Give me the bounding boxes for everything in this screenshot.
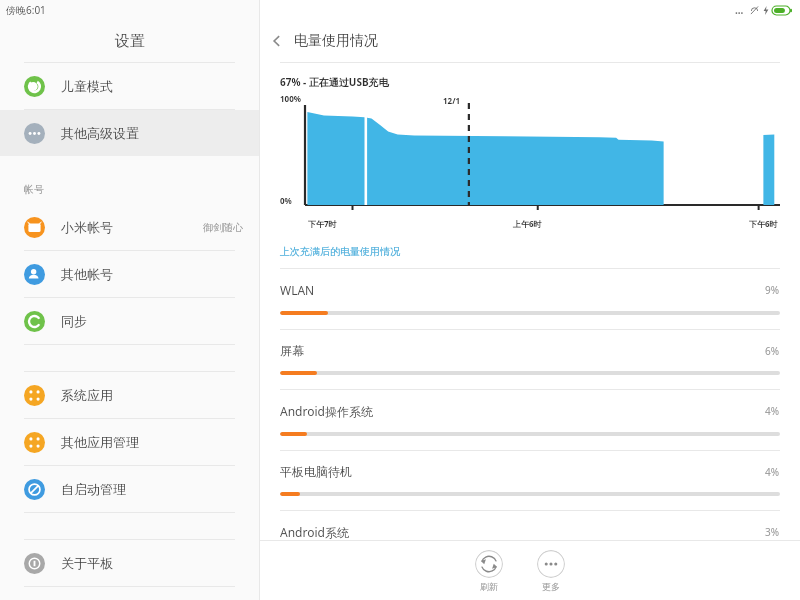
staticText: 系统应用 — [61, 387, 113, 403]
staticText: 帐号 — [24, 183, 44, 196]
staticText: 御剑随心 — [203, 221, 243, 234]
staticText: 12/1 — [443, 95, 461, 106]
button[interactable]: 小米帐号 — [0, 204, 259, 250]
button[interactable]: 其他高级设置 — [0, 110, 259, 156]
staticText: 儿童模式 — [61, 78, 113, 94]
button[interactable]: 其他应用管理 — [0, 419, 259, 465]
button[interactable]: 刷新 — [469, 548, 509, 594]
staticText: 设置 — [115, 32, 145, 51]
button[interactable]: 儿童模式 — [0, 63, 259, 109]
button[interactable]: 关于平板 — [0, 540, 259, 586]
button[interactable]: 平板电脑待机 — [260, 451, 800, 510]
staticText: 上次充满后的电量使用情况 — [280, 245, 400, 258]
staticText: 100% — [280, 93, 301, 104]
staticText: 下午6时 — [749, 218, 778, 229]
staticText: 4% — [765, 465, 780, 479]
staticText: 9% — [765, 283, 780, 297]
staticText: ... — [735, 3, 744, 17]
button[interactable]: 同步 — [0, 298, 259, 344]
button[interactable]: 上次充满后的电量使用情况 — [280, 245, 400, 258]
button[interactable]: 更多 — [531, 548, 571, 594]
staticText: Android操作系统 — [280, 403, 373, 419]
staticText: 上午6时 — [513, 218, 542, 229]
staticText: 小米帐号 — [61, 219, 113, 235]
staticText: Android系统 — [280, 524, 349, 540]
staticText: 傍晚6:01 — [6, 3, 46, 17]
staticText: 6% — [765, 344, 780, 358]
staticText: 其他高级设置 — [61, 125, 139, 141]
staticText: 0% — [280, 195, 292, 206]
button[interactable]: 其他帐号 — [0, 251, 259, 297]
staticText: 其他应用管理 — [61, 434, 139, 450]
staticText: 关于平板 — [61, 555, 113, 571]
staticText: 屏幕 — [280, 343, 304, 358]
staticText: 平板电脑待机 — [280, 464, 352, 479]
staticText: WLAN — [280, 282, 315, 298]
button[interactable]: Android系统 — [260, 511, 800, 540]
button[interactable]: WLAN — [260, 269, 800, 329]
staticText: 同步 — [61, 313, 87, 329]
button[interactable]: 自启动管理 — [0, 466, 259, 512]
staticText: 自启动管理 — [61, 481, 126, 497]
staticText: 刷新 — [480, 581, 498, 592]
staticText: 下午7时 — [308, 218, 337, 229]
staticText: 4% — [765, 404, 780, 418]
staticText: 其他帐号 — [61, 266, 113, 282]
button[interactable]: Back — [260, 24, 294, 58]
button[interactable]: 屏幕 — [260, 330, 800, 389]
staticText: 更多 — [542, 581, 560, 592]
staticText: 67% - 正在通过USB充电 — [280, 75, 389, 89]
staticText: 电量使用情况 — [294, 32, 378, 50]
button[interactable]: Android操作系统 — [260, 390, 800, 450]
button[interactable]: 系统应用 — [0, 372, 259, 418]
staticText: 3% — [765, 525, 780, 539]
